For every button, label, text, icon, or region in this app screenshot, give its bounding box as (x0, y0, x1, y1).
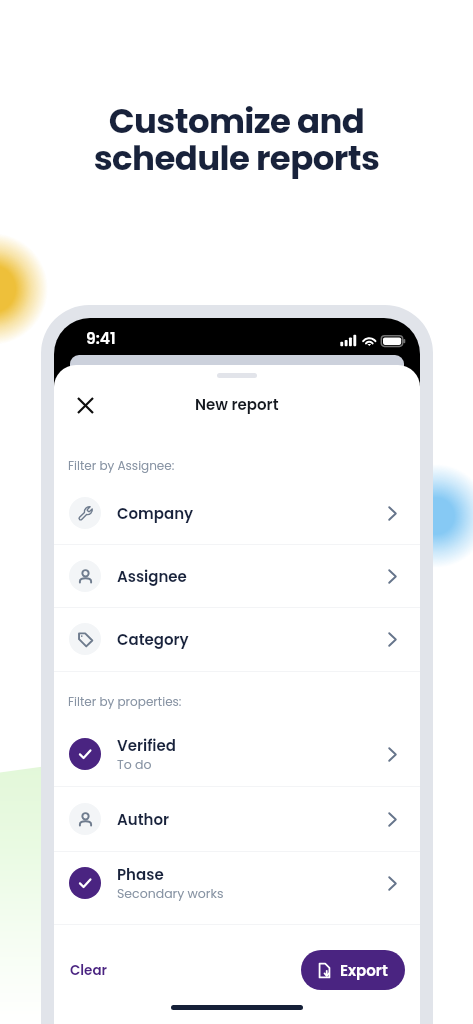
button[interactable]: Close (62, 385, 108, 425)
staticText: 9:41 (86, 328, 116, 350)
button[interactable]: Category (54, 607, 420, 671)
button[interactable]: Verified (54, 722, 420, 786)
staticText: To do (117, 756, 152, 773)
button[interactable]: Phase (54, 851, 420, 915)
staticText: New report (195, 394, 279, 415)
staticText: Assignee (117, 566, 187, 587)
staticText: Verified (117, 735, 176, 756)
button[interactable]: Company (54, 481, 420, 545)
staticText: Category (117, 629, 189, 650)
button[interactable]: Author (54, 787, 420, 851)
staticText: Clear (70, 961, 108, 980)
staticText: Filter by properties: (68, 693, 182, 710)
staticText: Filter by Assignee: (68, 457, 175, 474)
staticText: Customize and schedule reports (0, 97, 473, 182)
staticText: Export (340, 960, 388, 981)
staticText: Company (117, 503, 194, 524)
button[interactable]: Assignee (54, 544, 420, 608)
staticText: Author (117, 809, 170, 830)
button[interactable]: Export (301, 950, 405, 990)
staticText: Phase (117, 864, 164, 885)
button[interactable]: Clear (60, 954, 118, 987)
staticText: Secondary works (117, 885, 224, 902)
